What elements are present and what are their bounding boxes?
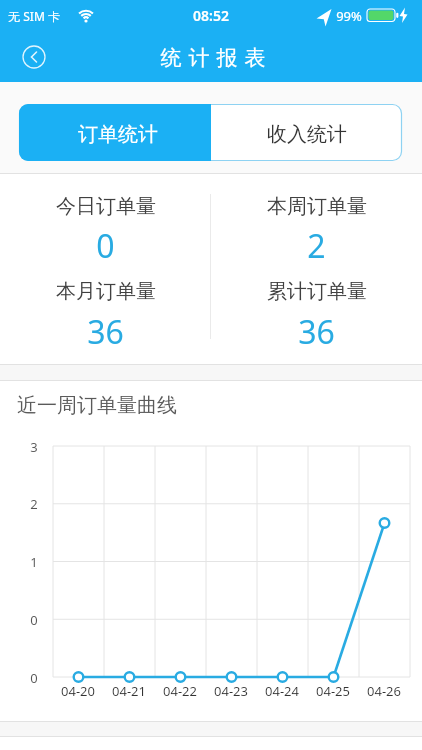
staticText: 04-24 — [265, 682, 299, 698]
staticText: 累计订单量 — [267, 279, 367, 304]
staticText: 近一周订单量曲线 — [17, 393, 177, 417]
staticText: 36 — [298, 310, 335, 344]
staticText: 36 — [87, 310, 124, 344]
staticText: 无 SIM 卡 — [8, 8, 60, 24]
staticText: 今日订单量 — [56, 194, 156, 219]
staticText: 04-23 — [214, 682, 248, 698]
staticText: 04-21 — [112, 682, 146, 698]
staticText: 本月订单量 — [56, 279, 156, 304]
button[interactable] — [14, 37, 54, 77]
staticText: 0 — [30, 611, 38, 627]
staticText: 3 — [30, 438, 38, 454]
staticText: 订单统计 — [78, 122, 158, 147]
staticText: 08:52 — [193, 6, 229, 25]
staticText: 1 — [30, 553, 38, 569]
button[interactable]: 订单统计 — [19, 104, 211, 161]
staticText: 2 — [30, 495, 38, 511]
staticText: 本周订单量 — [267, 194, 367, 219]
button[interactable]: 收入统计 — [211, 104, 402, 161]
staticText: 0 — [30, 669, 38, 685]
staticText: 04-26 — [367, 682, 401, 698]
staticText: 2 — [307, 224, 326, 258]
staticText: 04-25 — [316, 682, 350, 698]
staticText: 收入统计 — [267, 122, 347, 147]
staticText: 04-22 — [163, 682, 197, 698]
staticText: 04-20 — [61, 682, 95, 698]
staticText: 0 — [96, 224, 115, 258]
staticText: 统计报表 — [157, 45, 269, 69]
staticText: 99% — [336, 7, 362, 25]
